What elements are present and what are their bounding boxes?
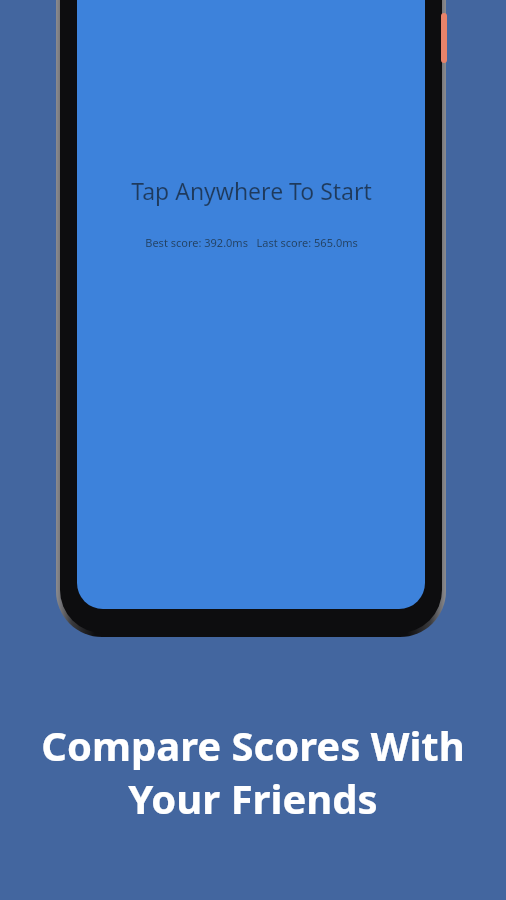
staticText: Best score: 392.0ms Last score: 565.0ms	[145, 235, 358, 250]
other: Power button	[441, 13, 447, 63]
staticText: Tap Anywhere To Start	[131, 175, 372, 206]
button[interactable]: Tap Anywhere To Start	[77, 0, 425, 609]
staticText: Compare Scores With Your Friends	[41, 718, 465, 825]
